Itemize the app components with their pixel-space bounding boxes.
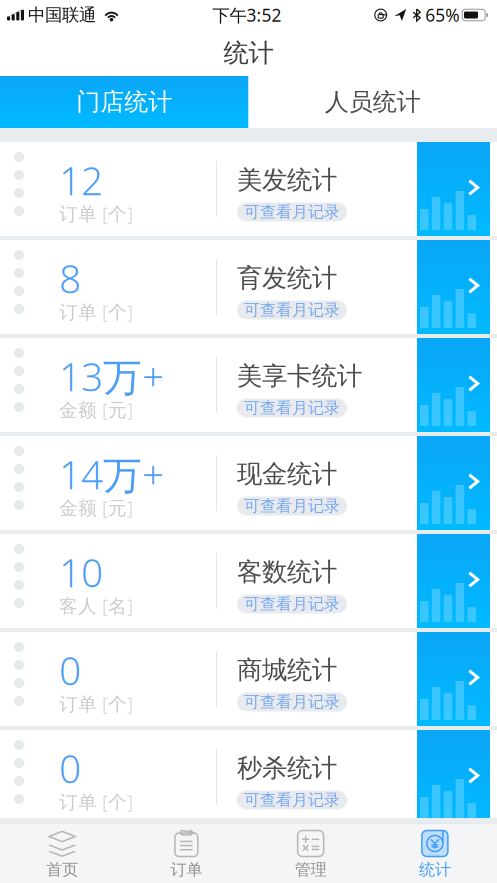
staticText: 商城统计 — [237, 654, 337, 685]
staticText: 13万+ — [59, 351, 164, 402]
staticText: 首页 — [46, 860, 78, 879]
button[interactable]: 人员统计 — [248, 76, 497, 128]
staticText: 订单 [个] — [59, 201, 133, 226]
staticText: 人员统计 — [325, 87, 421, 117]
staticText: 12 — [59, 155, 103, 206]
button[interactable]: 0 — [0, 632, 497, 726]
button[interactable]: 12 — [0, 142, 497, 236]
staticText: 美享卡统计 — [237, 360, 362, 391]
staticText: 现金统计 — [237, 458, 337, 489]
button[interactable]: 统计 — [373, 821, 497, 883]
staticText: 客人 [名] — [59, 593, 133, 618]
staticText: 订单 [个] — [59, 789, 133, 814]
button[interactable]: 14万+ — [0, 436, 497, 530]
staticText: 订单 — [170, 860, 202, 879]
staticText: 秒杀统计 — [237, 752, 337, 783]
staticText: 8 — [59, 253, 81, 304]
button[interactable]: 10 — [0, 534, 497, 628]
button[interactable]: 13万+ — [0, 338, 497, 432]
staticText: 美发统计 — [237, 164, 337, 195]
staticText: 客数统计 — [237, 556, 337, 587]
staticText: 0 — [59, 645, 81, 696]
staticText: 订单 [个] — [59, 691, 133, 716]
staticText: 育发统计 — [237, 262, 337, 293]
staticText: 金额 [元] — [59, 495, 133, 520]
button[interactable]: 首页 — [0, 821, 124, 883]
staticText: 订单 [个] — [59, 299, 133, 324]
staticText: 14万+ — [59, 449, 164, 500]
staticText: 统计 — [419, 860, 451, 879]
staticText: 可查看月记录 — [244, 692, 340, 712]
staticText: 中国联通 — [28, 4, 96, 26]
staticText: 可查看月记录 — [244, 496, 340, 516]
staticText: 可查看月记录 — [244, 300, 340, 320]
button[interactable]: 8 — [0, 240, 497, 334]
staticText: 门店统计 — [76, 87, 172, 117]
staticText: 金额 [元] — [59, 397, 133, 422]
button[interactable]: 0 — [0, 730, 497, 824]
staticText: 管理 — [295, 860, 327, 879]
button[interactable]: 管理 — [248, 821, 373, 883]
staticText: 0 — [59, 743, 81, 794]
button[interactable]: 门店统计 — [0, 76, 248, 128]
button[interactable]: 订单 — [124, 821, 248, 883]
staticText: 统计 — [223, 37, 273, 68]
staticText: 10 — [59, 547, 103, 598]
staticText: 65% — [425, 3, 459, 26]
staticText: 下午3:52 — [213, 3, 282, 26]
staticText: 可查看月记录 — [244, 398, 340, 418]
staticText: 可查看月记录 — [244, 594, 340, 614]
staticText: 可查看月记录 — [244, 790, 340, 810]
staticText: 可查看月记录 — [244, 202, 340, 222]
